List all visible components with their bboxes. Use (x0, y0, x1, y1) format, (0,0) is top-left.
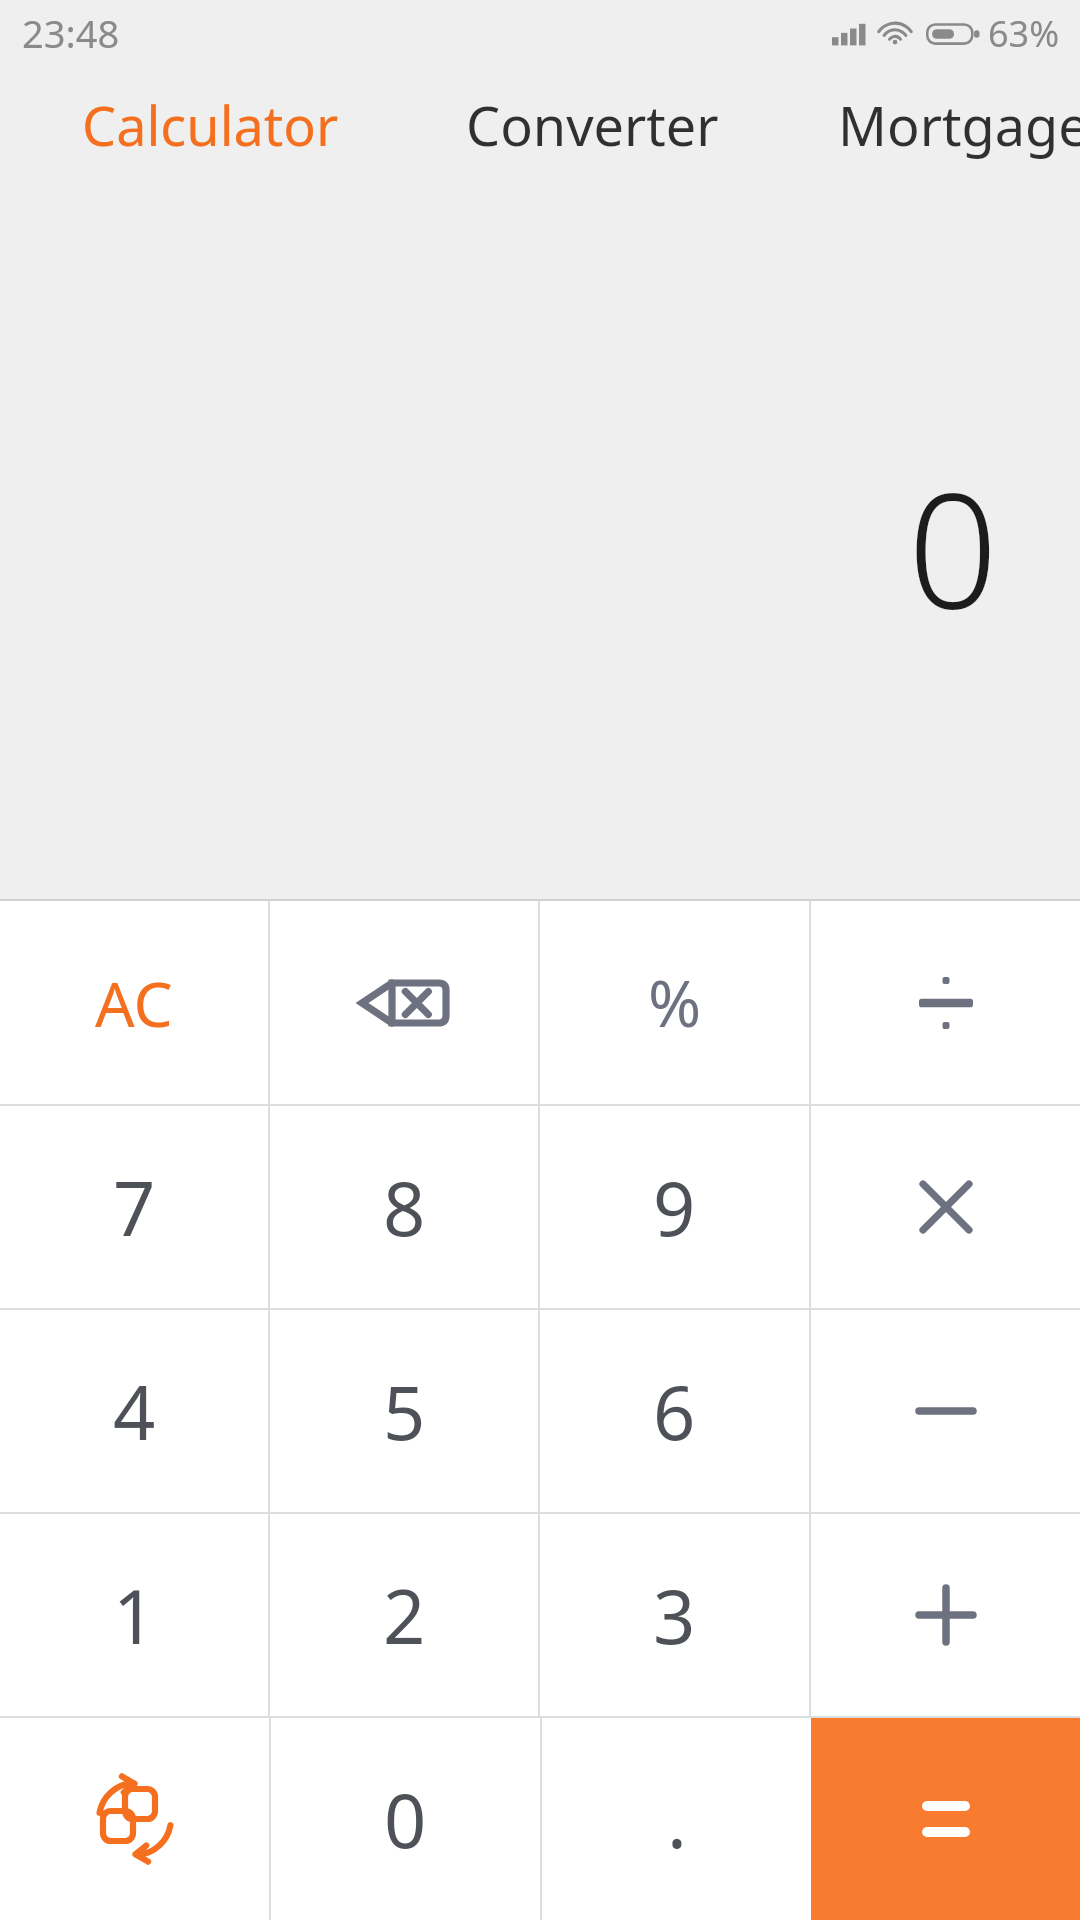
staticText: Mortgage (838, 88, 1080, 162)
button[interactable]: Plus (811, 1514, 1080, 1716)
button[interactable]: Converter (442, 74, 743, 176)
staticText: 23:48 (22, 7, 120, 59)
button[interactable]: 7 (0, 1106, 268, 1308)
staticText: 4 (113, 1361, 156, 1462)
button[interactable]: Divide (811, 901, 1080, 1104)
staticText: 9 (653, 1157, 696, 1258)
staticText: 0 (384, 1769, 427, 1870)
button[interactable]: % (540, 901, 809, 1104)
button[interactable]: 2 (270, 1514, 538, 1716)
staticText: 7 (113, 1157, 156, 1258)
staticText: 8 (383, 1157, 426, 1258)
button[interactable]: 5 (270, 1310, 538, 1512)
button[interactable]: Minus (811, 1310, 1080, 1512)
button[interactable]: Mortgage (814, 74, 1080, 176)
staticText: 5 (383, 1361, 426, 1462)
button[interactable]: 9 (540, 1106, 809, 1308)
staticText: 63% (988, 9, 1060, 58)
staticText: 3 (653, 1565, 696, 1666)
button[interactable]: 6 (540, 1310, 809, 1512)
button[interactable]: AC (0, 901, 268, 1104)
button[interactable]: 0 (271, 1718, 540, 1920)
staticText: 6 (653, 1361, 696, 1462)
staticText: AC (95, 961, 173, 1045)
button[interactable]: Calculator (58, 74, 363, 176)
button[interactable]: 8 (270, 1106, 538, 1308)
button[interactable]: Backspace (270, 901, 538, 1104)
button[interactable]: Convert (0, 1718, 269, 1920)
button[interactable]: 1 (0, 1514, 268, 1716)
staticText: 0 (907, 439, 998, 654)
staticText: 2 (383, 1565, 426, 1666)
staticText: Converter (466, 88, 719, 162)
button[interactable]: 4 (0, 1310, 268, 1512)
staticText: Calculator (82, 88, 339, 162)
button[interactable]: 3 (540, 1514, 809, 1716)
button[interactable]: Equals (811, 1718, 1080, 1920)
button[interactable]: Multiply (811, 1106, 1080, 1308)
staticText: 1 (113, 1565, 156, 1666)
staticText: . (667, 1769, 687, 1870)
button[interactable]: . (542, 1718, 811, 1920)
staticText: % (648, 959, 702, 1046)
